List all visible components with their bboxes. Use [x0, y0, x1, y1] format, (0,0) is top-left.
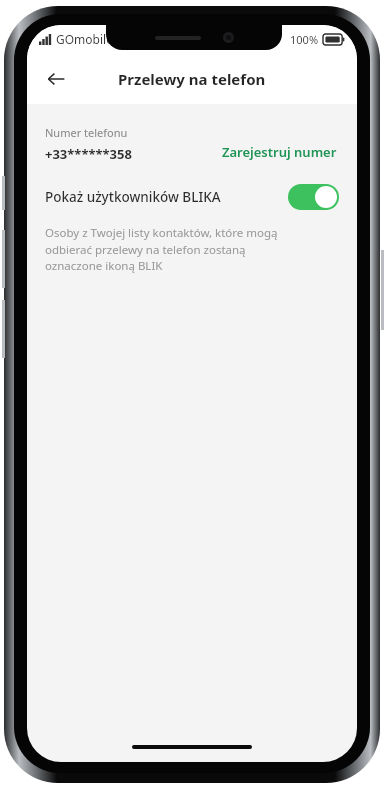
button[interactable]: Pokaż użytkowników BLIKA — [27, 182, 357, 212]
staticText: Zarejestruj numer — [222, 143, 337, 161]
staticText: Przelewy na telefon — [118, 69, 266, 89]
staticText: GOmobile — [56, 31, 113, 47]
button[interactable]: Pokaż użytkowników BLIKA — [288, 184, 339, 210]
staticText: Numer telefonu — [45, 125, 128, 140]
staticText: +33******358 — [45, 145, 132, 163]
button[interactable]: Wstecz — [37, 60, 75, 98]
staticText: 100% — [290, 32, 319, 47]
staticText: Osoby z Twojej listy kontaktów, które mo… — [45, 225, 295, 273]
button[interactable]: Zarejestruj numer — [220, 141, 339, 163]
staticText: Pokaż użytkowników BLIKA — [45, 188, 280, 206]
